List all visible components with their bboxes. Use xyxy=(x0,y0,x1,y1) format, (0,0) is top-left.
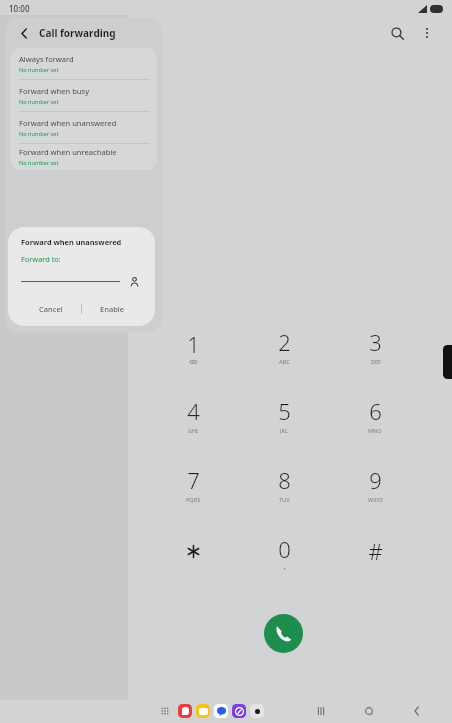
staticText: 3 xyxy=(369,327,382,357)
button[interactable]: Pinterest xyxy=(178,704,192,718)
staticText: GHI xyxy=(188,427,199,434)
staticText: 9 xyxy=(369,465,382,495)
staticText: DEF xyxy=(371,358,381,365)
staticText: ABC xyxy=(279,358,290,365)
staticText: 1 xyxy=(187,329,200,359)
staticText: 7 xyxy=(187,465,200,495)
button[interactable]: 2 xyxy=(251,320,317,372)
staticText: Forward when unanswered xyxy=(21,237,122,247)
button[interactable]: Enable xyxy=(82,296,142,322)
staticText: + xyxy=(283,565,287,572)
button[interactable] xyxy=(160,527,226,579)
button[interactable]: Forward when unanswered xyxy=(10,112,157,143)
button[interactable]: 5 xyxy=(251,389,317,441)
staticText: No number set xyxy=(19,98,59,106)
button[interactable]: Forward when busy xyxy=(10,80,157,111)
button[interactable]: Files xyxy=(196,704,210,718)
button[interactable]: Home xyxy=(356,699,382,723)
button[interactable]: # xyxy=(342,527,408,579)
staticText: No number set xyxy=(19,159,59,167)
button[interactable]: Back xyxy=(15,24,33,42)
button[interactable]: 8 xyxy=(251,458,317,510)
staticText: 8 xyxy=(278,465,291,495)
button[interactable]: Call xyxy=(264,614,303,653)
button[interactable]: Cancel xyxy=(21,296,81,322)
staticText: WXYZ xyxy=(368,496,383,503)
button[interactable]: Choose contact xyxy=(127,274,142,289)
button[interactable]: Forward when unreachable xyxy=(10,144,157,170)
staticText: Enable xyxy=(100,304,125,314)
staticText: Cancel xyxy=(39,304,63,314)
button[interactable]: 4 xyxy=(160,389,226,441)
button[interactable]: Camera xyxy=(250,704,264,718)
button[interactable]: 0 xyxy=(251,527,317,579)
staticText: PQRS xyxy=(186,496,201,503)
button[interactable]: Edge panel xyxy=(443,345,452,379)
button[interactable]: 9 xyxy=(342,458,408,510)
staticText: JKL xyxy=(280,427,289,434)
staticText: Forward when busy xyxy=(19,86,90,96)
staticText: TUV xyxy=(279,496,290,503)
staticText: 4 xyxy=(187,396,200,426)
button[interactable]: Apps xyxy=(157,703,173,719)
staticText: Forward to: xyxy=(21,254,61,264)
button[interactable]: Browser xyxy=(232,704,246,718)
button[interactable]: Always forward xyxy=(10,48,157,79)
button[interactable]: More options xyxy=(414,20,440,46)
staticText: MNO xyxy=(368,427,382,434)
button[interactable]: Search xyxy=(384,20,410,46)
staticText: No number set xyxy=(19,66,59,74)
staticText: Always forward xyxy=(19,54,74,64)
button[interactable]: Back xyxy=(404,699,430,723)
staticText: No number set xyxy=(19,130,59,138)
staticText: Forward when unreachable xyxy=(19,147,117,157)
button[interactable]: 3 xyxy=(342,320,408,372)
staticText: # xyxy=(368,536,383,566)
button[interactable]: 6 xyxy=(342,389,408,441)
staticText: Forward when unanswered xyxy=(19,118,117,128)
button[interactable]: 7 xyxy=(160,458,226,510)
staticText: Call forwarding xyxy=(39,26,116,40)
button[interactable]: Messages xyxy=(214,704,228,718)
staticText: 5 xyxy=(278,396,291,426)
staticText: 2 xyxy=(278,327,291,357)
staticText: 0 xyxy=(278,534,291,564)
button[interactable]: Recents xyxy=(308,699,334,723)
staticText: 6 xyxy=(369,396,382,426)
staticText: 10:00 xyxy=(9,3,30,14)
button[interactable]: 1 xyxy=(160,320,226,372)
